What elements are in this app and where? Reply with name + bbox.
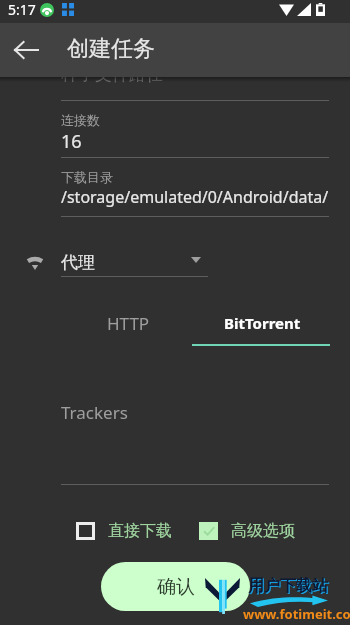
button[interactable]: 直接下载 [70,515,178,546]
staticText: HTTP [107,312,150,335]
staticText: 代理 [61,252,95,273]
other: Proxy [27,257,43,270]
staticText: 连接数 [61,112,100,128]
button[interactable]: Back [4,28,48,72]
staticText: 5:17 [8,0,36,19]
button[interactable]: 代理 [61,248,208,278]
staticText: 直接下载 [108,521,172,541]
button[interactable]: BitTorrent [195,304,329,342]
staticText: 高级选项 [231,521,295,541]
button[interactable]: 高级选项 [193,515,301,546]
staticText: 16 [61,129,82,154]
staticText: BitTorrent [224,313,301,333]
staticText: www.fotimeit.com [243,605,350,623]
button[interactable]: HTTP [61,304,195,342]
staticText: 创建任务 [67,35,155,63]
staticText: 用户下载站 [248,576,328,596]
staticText: Trackers [61,401,128,424]
button[interactable]: 确认 [101,562,250,611]
staticText: /storage/emulated/0/Android/data/ [61,186,329,208]
staticText: 种子文件路径 [61,64,163,85]
staticText: 确认 [157,575,195,599]
staticText: 用户下载站 [249,577,329,597]
staticText: 下载目录 [61,169,113,185]
